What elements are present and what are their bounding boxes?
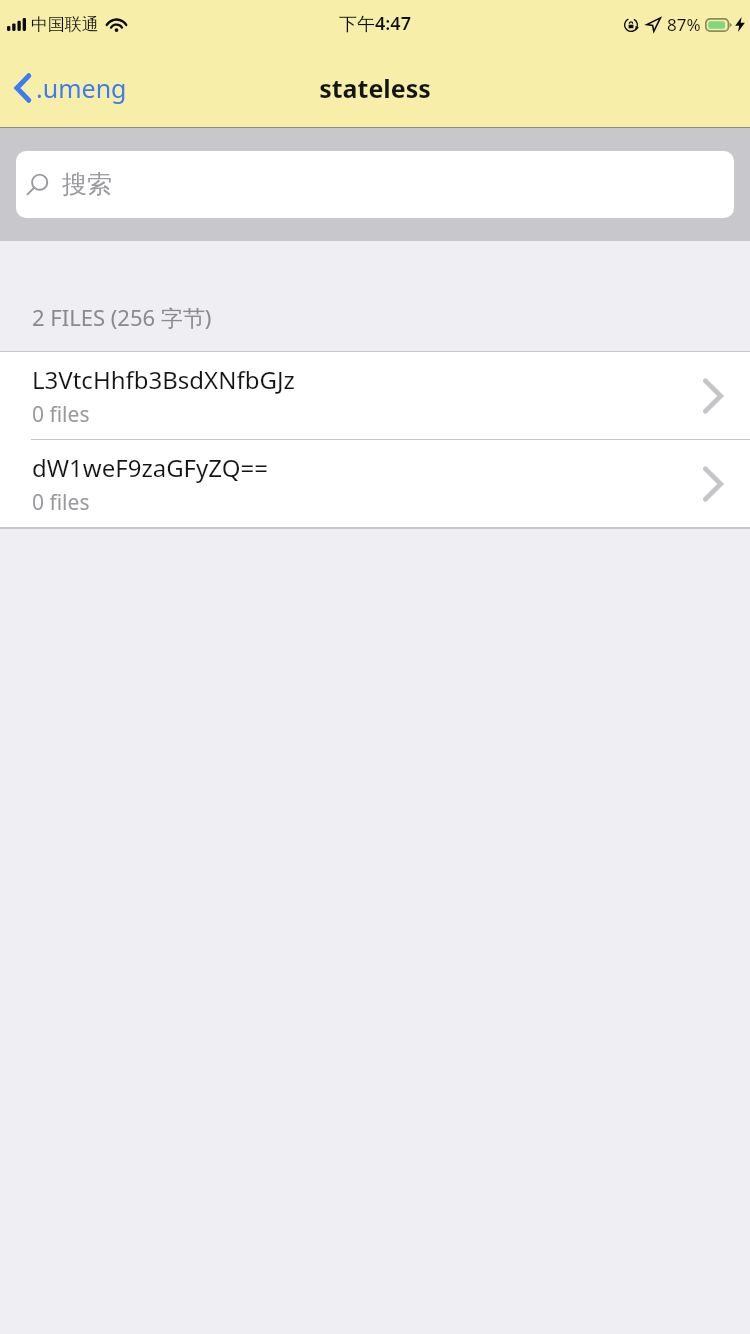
button[interactable]: L3VtcHhfb3BsdXNfbGJz: [0, 352, 750, 439]
staticText: 2 FILES (256 字节): [32, 302, 212, 332]
button[interactable]: 搜索: [16, 151, 734, 218]
staticText: 搜索: [62, 169, 112, 200]
staticText: stateless: [319, 71, 431, 105]
staticText: 87%: [667, 13, 701, 36]
button[interactable]: .umeng: [0, 63, 139, 113]
staticText: dW1weF9zaGFyZQ==: [32, 451, 268, 484]
staticText: 0 files: [32, 488, 90, 517]
staticText: 中国联通: [31, 14, 99, 35]
staticText: L3VtcHhfb3BsdXNfbGJz: [32, 363, 295, 396]
other: Open folder: [702, 465, 724, 503]
other: Open folder: [702, 377, 724, 415]
staticText: .umeng: [36, 71, 127, 105]
staticText: 下午4:47: [339, 11, 411, 36]
button[interactable]: dW1weF9zaGFyZQ==: [0, 440, 750, 527]
staticText: 0 files: [32, 400, 90, 429]
